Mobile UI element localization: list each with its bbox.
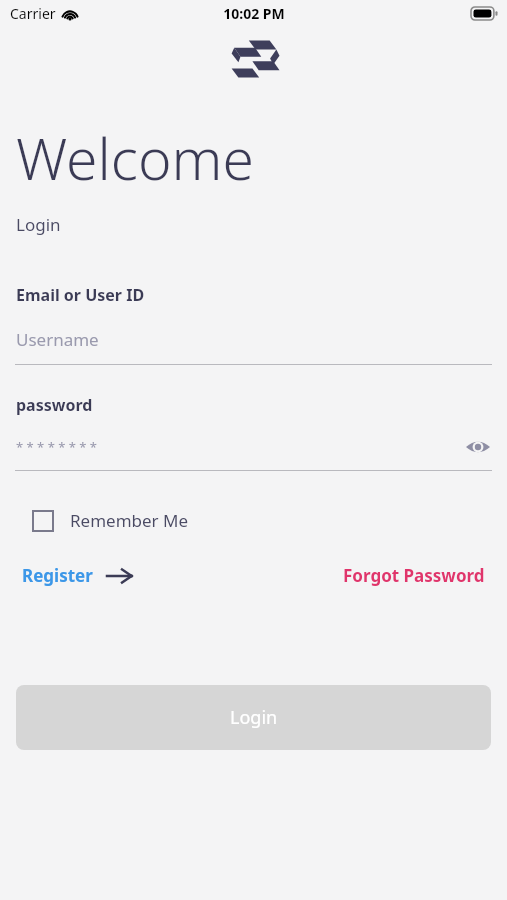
button[interactable]: Username	[16, 324, 491, 354]
staticText: Forgot Password	[343, 564, 485, 587]
staticText: Login	[16, 213, 61, 236]
button[interactable]: Forgot Password	[343, 564, 485, 587]
button[interactable]: Show password	[463, 432, 493, 462]
staticText: Username	[16, 328, 99, 351]
button[interactable]: * * * * * * * *	[16, 438, 463, 456]
staticText: Login	[230, 705, 278, 730]
button[interactable]: Login	[16, 685, 491, 750]
staticText: Carrier	[10, 4, 56, 23]
staticText: 10:02 PM	[223, 4, 285, 23]
staticText: password	[16, 394, 93, 416]
staticText: Welcome	[16, 119, 254, 197]
staticText: * * * * * * * *	[16, 438, 97, 456]
staticText: Register	[22, 564, 93, 587]
button[interactable]: Register	[22, 564, 133, 587]
staticText: Remember Me	[70, 509, 189, 532]
staticText: Email or User ID	[16, 284, 145, 306]
button[interactable]: Remember Me	[32, 509, 189, 532]
